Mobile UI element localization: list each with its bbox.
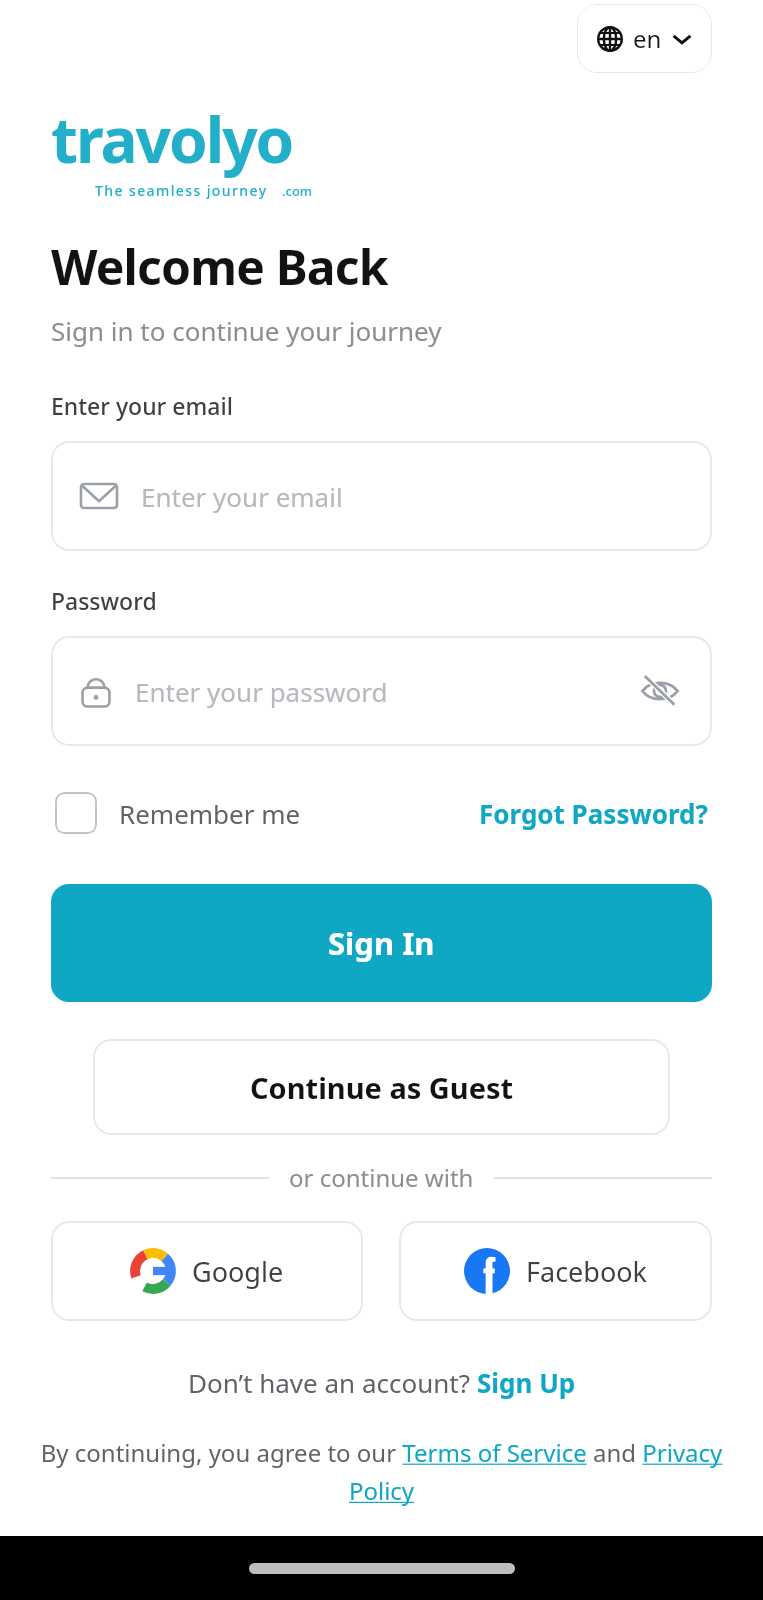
staticText: Enter your email	[141, 479, 343, 514]
staticText: Facebook	[526, 1253, 648, 1290]
button[interactable]: Google	[51, 1221, 363, 1321]
staticText: By continuing, you agree to our Terms of…	[40, 1436, 723, 1507]
button[interactable]: Sign Up	[477, 1365, 576, 1400]
button[interactable]: Enter your password	[51, 636, 712, 746]
button[interactable]: Facebook	[399, 1221, 712, 1321]
staticText: Enter your email	[51, 390, 233, 421]
button[interactable]: Forgot Password?	[475, 792, 712, 835]
staticText: Google	[192, 1253, 284, 1290]
staticText: Enter your password	[135, 674, 634, 709]
staticText: .com	[282, 182, 313, 200]
button[interactable]: Remember me	[51, 788, 305, 838]
button[interactable]: Change language, English	[577, 4, 712, 73]
staticText: Sign Up	[477, 1365, 576, 1400]
button[interactable]: Continue as Guest	[93, 1039, 670, 1135]
staticText: Don’t have an account?	[188, 1365, 477, 1400]
staticText: or continue with	[289, 1161, 474, 1194]
staticText: en	[633, 22, 662, 55]
staticText: Password	[51, 585, 157, 616]
staticText: Welcome Back	[51, 234, 388, 299]
button[interactable]: Enter your email	[51, 441, 712, 551]
staticText: Sign In	[328, 922, 435, 964]
staticText: Sign in to continue your journey	[51, 313, 442, 348]
staticText: The seamless journey	[95, 181, 268, 200]
staticText: travolyo	[51, 97, 293, 181]
button[interactable]: Show password	[634, 665, 686, 717]
staticText: Remember me	[119, 796, 301, 831]
button[interactable]: Sign In	[51, 884, 712, 1002]
staticText: Continue as Guest	[250, 1068, 514, 1107]
staticText: Forgot Password?	[479, 796, 708, 831]
